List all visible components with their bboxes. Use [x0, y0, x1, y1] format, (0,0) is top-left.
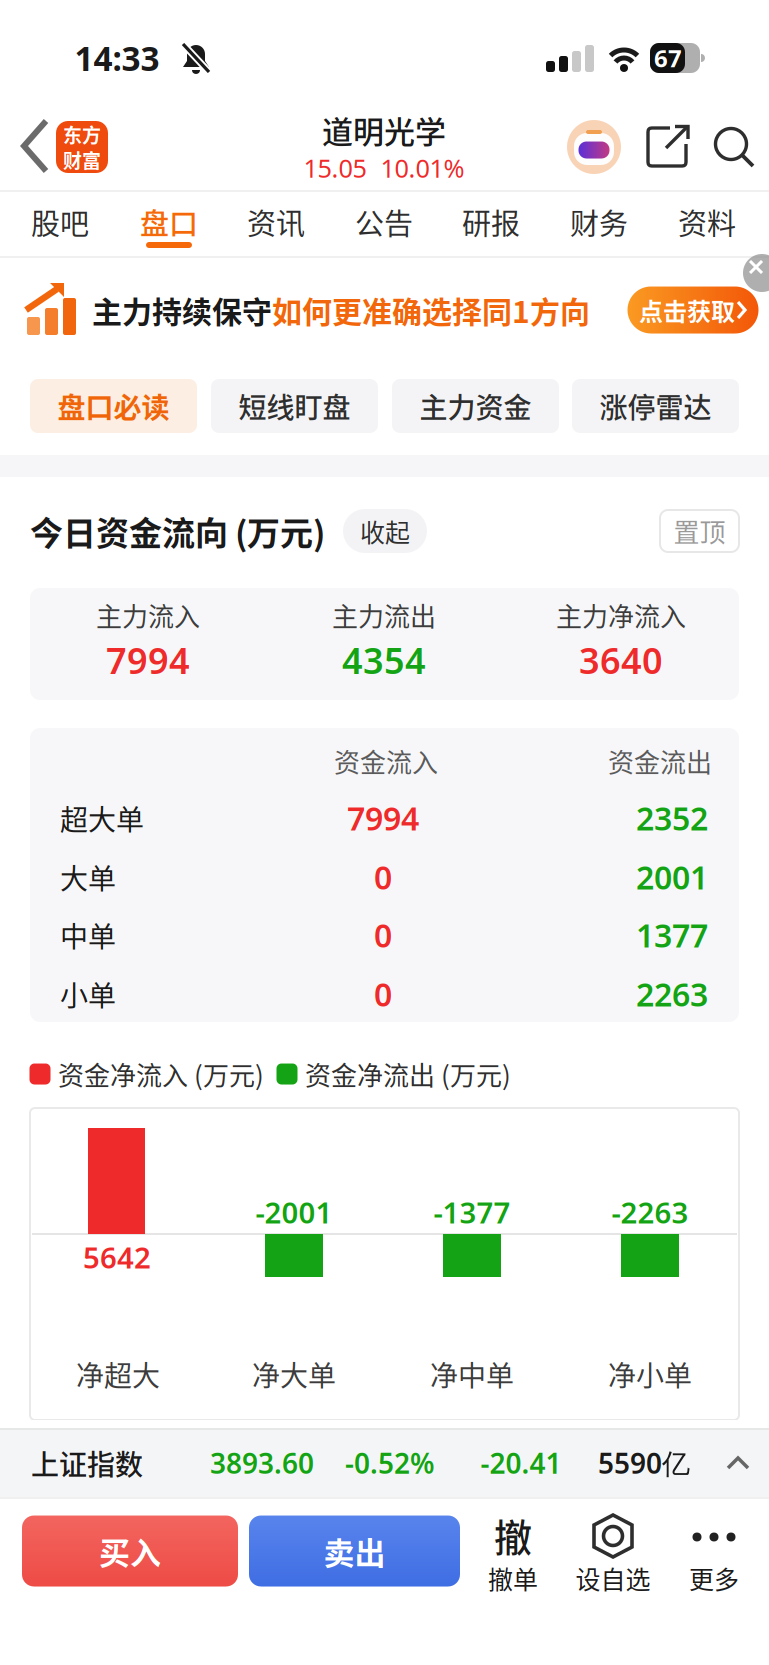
- staticText: 买入: [99, 1529, 161, 1573]
- staticText: 主力资金: [419, 386, 531, 426]
- staticText: 研报: [462, 201, 520, 243]
- staticText: 14:33: [74, 36, 159, 80]
- staticText: 短线盯盘: [238, 386, 350, 426]
- staticText: 涨停雷达: [599, 386, 711, 426]
- staticText: 小单: [60, 974, 116, 1014]
- staticText: 卖出: [323, 1529, 385, 1573]
- staticText: 大单: [60, 857, 116, 897]
- staticText: 收起: [360, 513, 410, 549]
- staticText: 净小单: [608, 1354, 692, 1394]
- staticText: 净超大: [76, 1354, 160, 1394]
- staticText: 资金净流入 (万元): [58, 1055, 264, 1093]
- staticText: 主力流出: [332, 596, 436, 634]
- staticText: 超大单: [60, 798, 144, 838]
- staticText: 2352: [636, 797, 708, 839]
- staticText: 2263: [636, 973, 708, 1015]
- staticText: 盘口: [140, 201, 198, 243]
- staticText: 东方: [63, 120, 101, 148]
- staticText: 3640: [579, 636, 663, 684]
- staticText: 资金流入: [334, 742, 438, 780]
- staticText: 资料: [678, 201, 736, 243]
- staticText: 盘口必读: [57, 386, 169, 426]
- staticText: 道明光学: [322, 108, 446, 152]
- staticText: -20.41: [480, 1444, 561, 1482]
- staticText: 净中单: [430, 1354, 514, 1394]
- staticText: 主力持续保守: [92, 288, 272, 332]
- staticText: -1377: [433, 1192, 510, 1231]
- staticText: 7994: [106, 636, 190, 684]
- staticText: 上证指数: [31, 1443, 143, 1483]
- staticText: 主力净流入: [556, 596, 686, 634]
- staticText: 5642: [83, 1237, 151, 1276]
- staticText: 更多: [689, 1560, 739, 1596]
- staticText: 公告: [355, 201, 413, 243]
- staticText: 0: [374, 973, 392, 1015]
- staticText: 如何更准确选择同1方向: [272, 288, 590, 332]
- staticText: 今日资金流向 (万元): [30, 507, 325, 555]
- staticText: 财务: [570, 201, 628, 243]
- staticText: 15.05 10.01%: [303, 151, 464, 185]
- staticText: 点击获取: [639, 293, 735, 327]
- staticText: 5590亿: [598, 1444, 690, 1482]
- staticText: -2001: [255, 1192, 332, 1231]
- staticText: 2001: [636, 856, 708, 898]
- staticText: 1377: [636, 914, 708, 956]
- staticText: 置顶: [673, 512, 725, 550]
- staticText: 3893.60: [210, 1444, 314, 1482]
- staticText: 4354: [342, 636, 426, 684]
- staticText: 0: [374, 914, 392, 956]
- staticText: 0: [374, 856, 392, 898]
- staticText: 净大单: [252, 1354, 336, 1394]
- staticText: 设自选: [575, 1560, 650, 1596]
- staticText: 主力流入: [96, 596, 200, 634]
- staticText: 撤单: [488, 1560, 538, 1596]
- staticText: 财富: [63, 146, 101, 173]
- staticText: 中单: [60, 915, 116, 955]
- staticText: 7994: [347, 797, 419, 839]
- staticText: 股吧: [31, 201, 89, 243]
- staticText: -0.52%: [345, 1444, 435, 1482]
- staticText: 资金净流出 (万元): [305, 1055, 511, 1093]
- staticText: 资金流出: [608, 742, 712, 780]
- staticText: 67: [654, 42, 682, 74]
- staticText: 资讯: [247, 201, 305, 243]
- staticText: -2263: [611, 1192, 688, 1231]
- staticText: 撤: [494, 1507, 532, 1562]
